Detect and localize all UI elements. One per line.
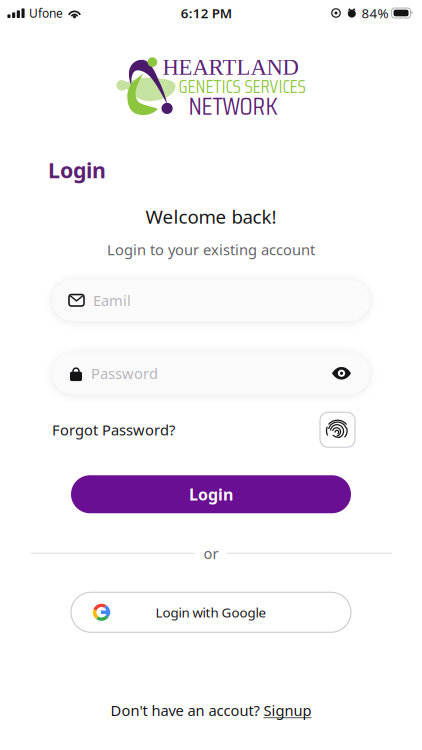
staticText: Login [48,156,106,184]
staticText: Forgot Password? [52,420,175,439]
staticText: Login [189,484,233,505]
button[interactable]: Forgot Password? [52,420,175,439]
button[interactable]: Show password [332,367,351,379]
button[interactable]: Login [71,475,351,513]
staticText: Signup [263,700,311,720]
button[interactable]: Biometric login [320,412,355,447]
staticText: Login to your existing account [107,240,315,259]
staticText: HEARTLAND [162,54,298,79]
staticText: Don't have an accout? [110,700,263,720]
button[interactable]: Login with Google [71,592,351,632]
staticText: Welcome back! [145,204,276,229]
staticText: GENETICS SERVICES [178,72,305,101]
staticText: 84% [361,4,388,22]
staticText: Password [91,363,158,383]
staticText: Ufone [29,5,63,21]
staticText: Eamil [93,290,131,310]
staticText: or [203,543,218,563]
button[interactable]: Signup [263,700,311,720]
staticText: 6:12 PM [181,4,232,22]
staticText: NETWORK [188,86,277,126]
staticText: Login with Google [155,603,266,621]
